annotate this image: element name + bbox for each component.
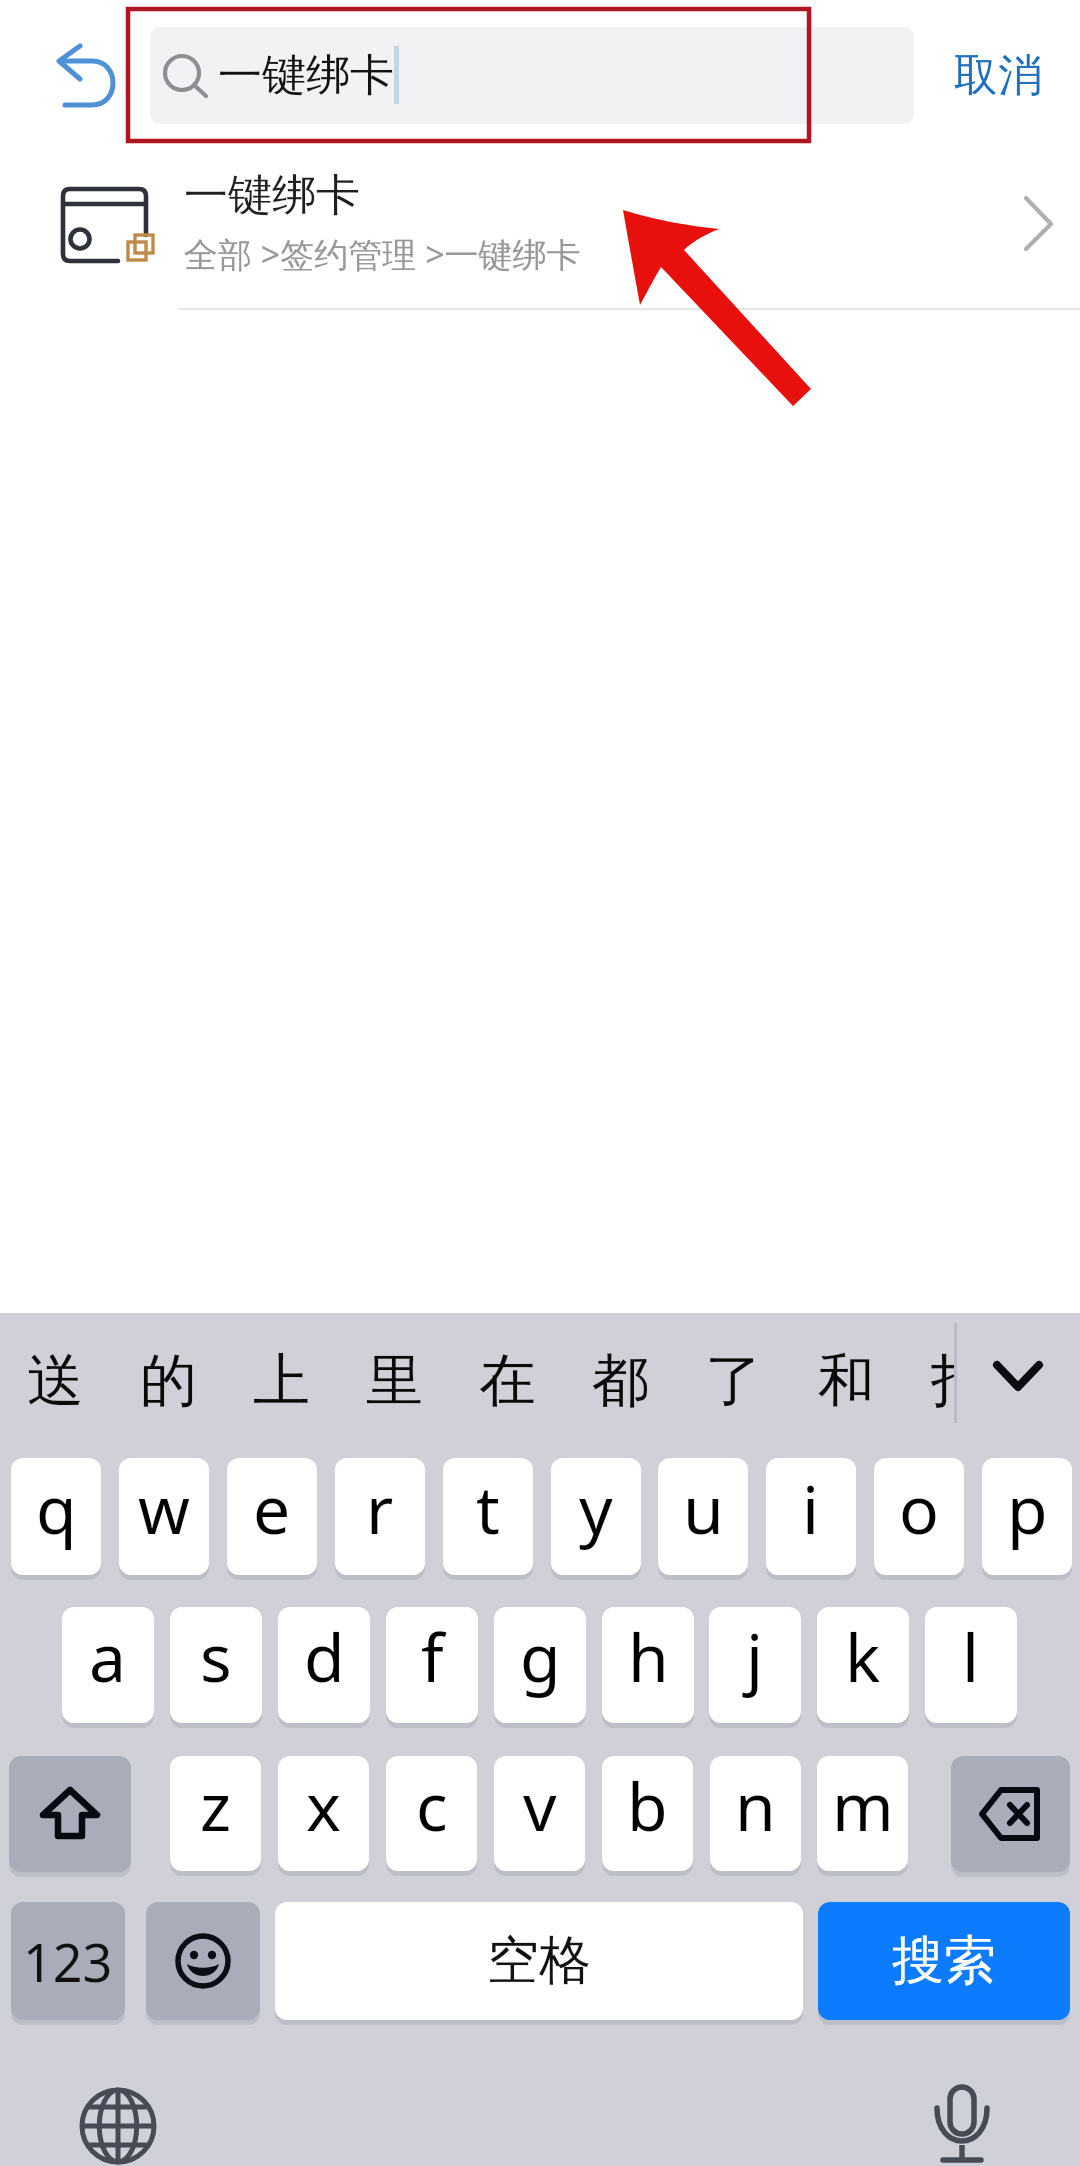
staticText: l: [962, 1611, 980, 1701]
staticText: 里: [366, 1345, 423, 1417]
button[interactable]: 打: [903, 1325, 956, 1437]
staticText: s: [200, 1611, 232, 1701]
staticText: x: [306, 1760, 341, 1850]
staticText: z: [200, 1760, 232, 1850]
staticText: k: [845, 1611, 881, 1701]
button[interactable]: Hide keyboard: [972, 1331, 1064, 1423]
staticText: t: [476, 1463, 500, 1553]
staticText: 全部 >签约管理 >一键绑卡: [184, 231, 581, 277]
staticText: 在: [479, 1345, 536, 1417]
staticText: 搜索: [892, 1928, 996, 1994]
staticText: o: [899, 1463, 939, 1553]
button[interactable]: 的: [112, 1325, 224, 1437]
button[interactable]: 和: [790, 1325, 902, 1437]
button[interactable]: Back: [40, 25, 140, 125]
staticText: 取消: [954, 48, 1042, 103]
button[interactable]: 都: [564, 1325, 676, 1437]
button[interactable]: b: [602, 1756, 693, 1871]
button[interactable]: 上: [225, 1325, 337, 1437]
staticText: e: [253, 1463, 291, 1553]
button[interactable]: u: [658, 1458, 748, 1575]
button[interactable]: Change language: [78, 2088, 156, 2166]
button[interactable]: l: [925, 1607, 1017, 1723]
staticText: 送: [27, 1345, 84, 1417]
staticText: 和: [818, 1345, 875, 1417]
staticText: j: [746, 1611, 764, 1701]
button[interactable]: 搜索: [818, 1902, 1070, 2020]
staticText: u: [683, 1463, 724, 1553]
button[interactable]: Emoji: [146, 1902, 260, 2020]
button[interactable]: h: [602, 1607, 694, 1723]
staticText: p: [1007, 1463, 1048, 1553]
staticText: y: [579, 1463, 613, 1553]
button[interactable]: r: [335, 1458, 425, 1575]
button[interactable]: y: [551, 1458, 641, 1575]
button[interactable]: w: [119, 1458, 209, 1575]
staticText: 上: [253, 1345, 310, 1417]
button[interactable]: m: [817, 1756, 908, 1871]
button[interactable]: 在: [451, 1325, 563, 1437]
button[interactable]: d: [278, 1607, 370, 1723]
button[interactable]: t: [443, 1458, 533, 1575]
button[interactable]: q: [11, 1458, 101, 1575]
staticText: a: [89, 1611, 127, 1701]
button[interactable]: 123: [11, 1902, 125, 2020]
staticText: v: [523, 1760, 557, 1850]
staticText: 空格: [487, 1928, 591, 1994]
staticText: 123: [23, 1926, 113, 1997]
staticText: h: [628, 1611, 669, 1701]
button[interactable]: 了: [677, 1325, 789, 1437]
staticText: q: [36, 1463, 77, 1553]
staticText: 一键绑卡: [218, 48, 394, 103]
button[interactable]: 送: [0, 1325, 111, 1437]
button[interactable]: f: [386, 1607, 478, 1723]
button[interactable]: i: [766, 1458, 856, 1575]
staticText: n: [735, 1760, 776, 1850]
button[interactable]: c: [386, 1756, 477, 1871]
button[interactable]: n: [710, 1756, 801, 1871]
button[interactable]: p: [982, 1458, 1072, 1575]
button[interactable]: 里: [338, 1325, 450, 1437]
button[interactable]: o: [874, 1458, 964, 1575]
staticText: f: [421, 1611, 444, 1701]
staticText: r: [366, 1463, 394, 1553]
button[interactable]: 一键绑卡: [0, 152, 1080, 308]
staticText: 一键绑卡: [184, 168, 360, 223]
button[interactable]: 空格: [275, 1902, 803, 2020]
staticText: 都: [592, 1345, 649, 1417]
button[interactable]: s: [170, 1607, 262, 1723]
button[interactable]: 取消: [933, 20, 1063, 130]
button[interactable]: e: [227, 1458, 317, 1575]
button[interactable]: j: [709, 1607, 801, 1723]
staticText: w: [138, 1463, 190, 1553]
button[interactable]: Backspace: [951, 1756, 1070, 1872]
staticText: c: [416, 1760, 448, 1850]
staticText: 打: [931, 1345, 956, 1417]
button[interactable]: 一键绑卡: [150, 27, 914, 124]
staticText: 了: [705, 1345, 762, 1417]
staticText: 的: [140, 1345, 197, 1417]
button[interactable]: Voice input: [930, 2082, 994, 2146]
staticText: g: [520, 1611, 561, 1701]
staticText: b: [627, 1760, 668, 1850]
button[interactable]: x: [278, 1756, 369, 1871]
staticText: d: [304, 1611, 345, 1701]
staticText: m: [832, 1760, 894, 1850]
button[interactable]: a: [62, 1607, 154, 1723]
button[interactable]: g: [494, 1607, 586, 1723]
button[interactable]: Shift: [9, 1756, 131, 1872]
button[interactable]: k: [817, 1607, 909, 1723]
button[interactable]: z: [170, 1756, 261, 1871]
button[interactable]: v: [494, 1756, 585, 1871]
staticText: i: [802, 1463, 820, 1553]
